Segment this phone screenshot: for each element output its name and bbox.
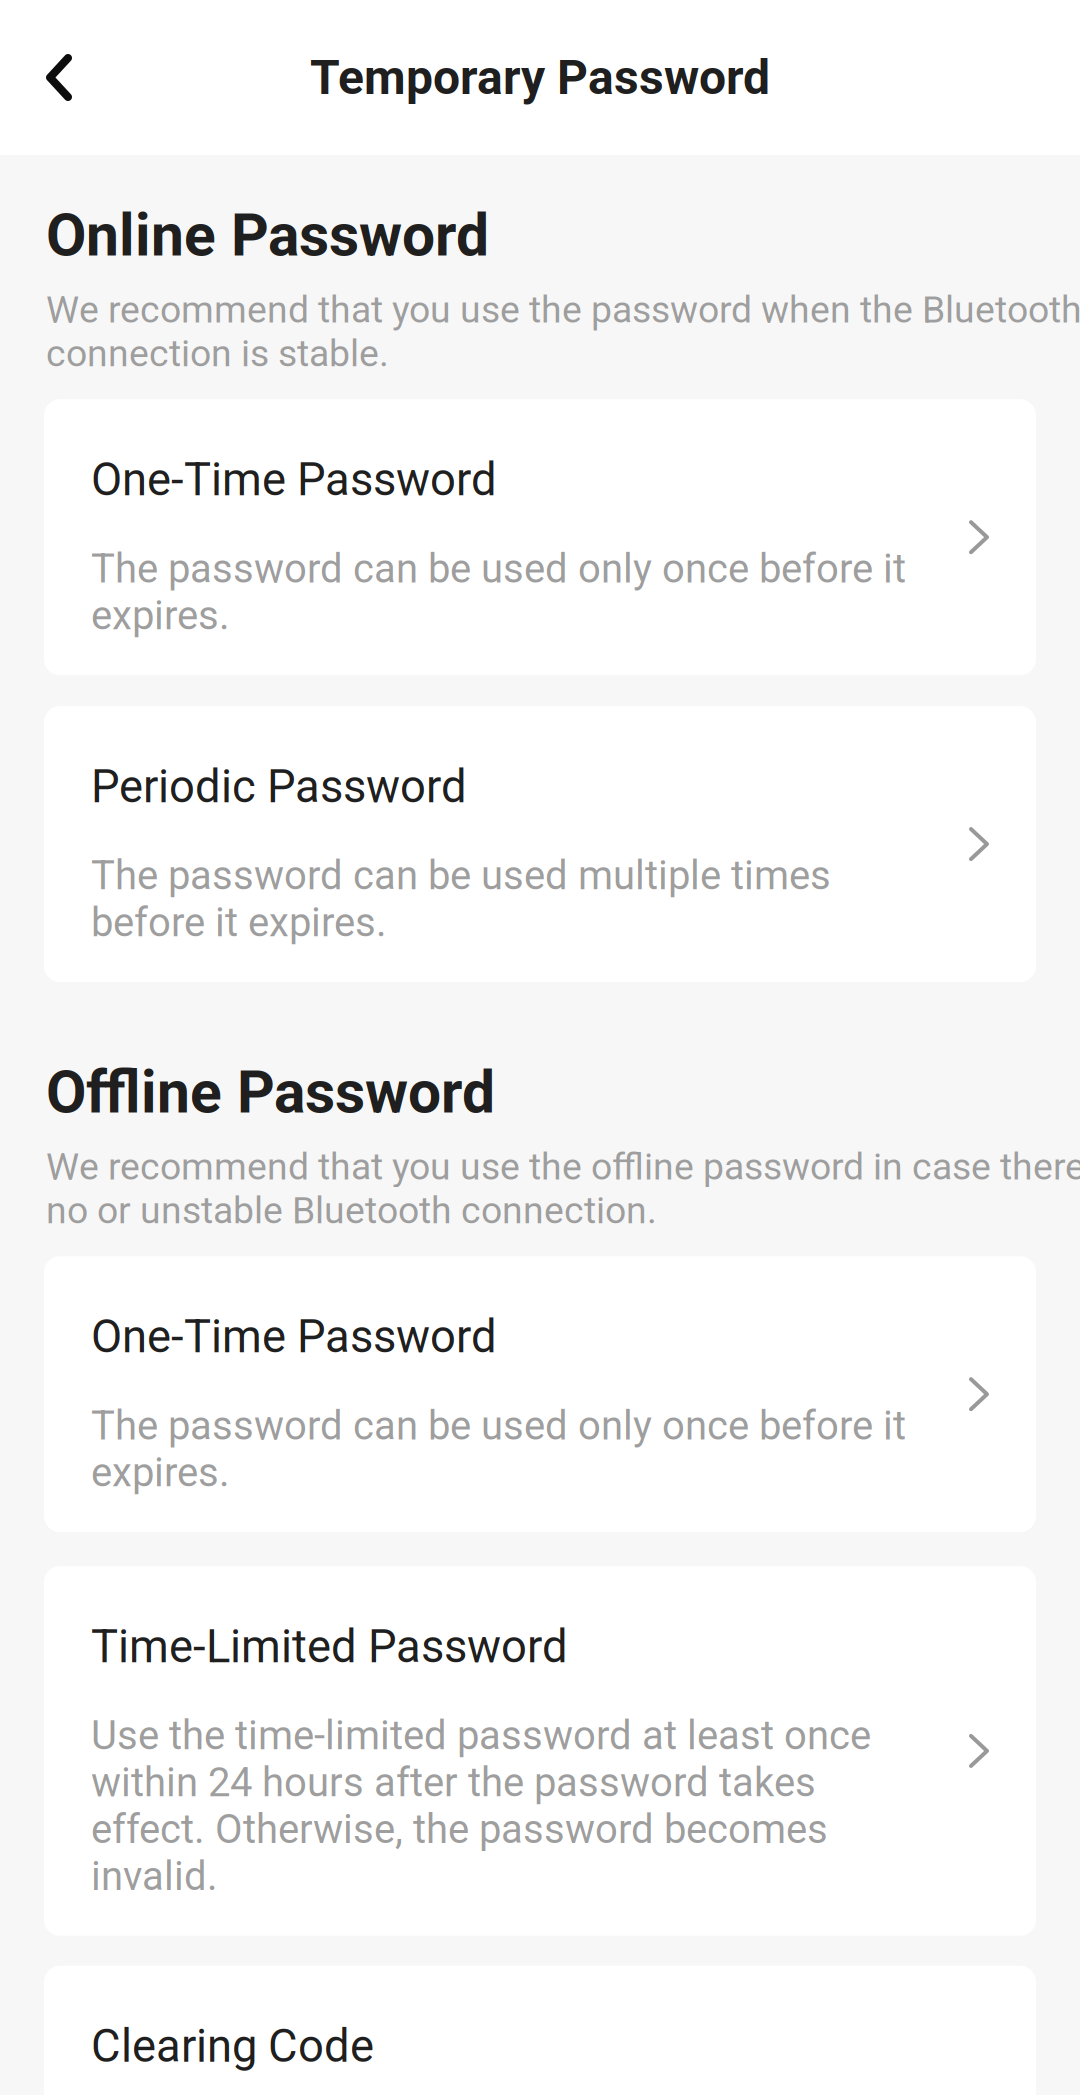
button[interactable]: One-Time Password (44, 1256, 1036, 1532)
staticText: The password can be used only once befor… (91, 545, 906, 639)
staticText: The password can be used multiple times … (91, 852, 831, 946)
staticText: Clearing Code (91, 2020, 374, 2073)
button[interactable]: Periodic Password (44, 706, 1036, 982)
staticText: Use the time-limited password at least o… (91, 1712, 871, 1900)
button[interactable]: One-Time Password (44, 399, 1036, 675)
staticText: Online Password (46, 201, 489, 270)
staticText: We recommend that you use the password w… (46, 288, 1080, 375)
staticText: Offline Password (46, 1058, 495, 1127)
staticText: Periodic Password (91, 760, 467, 813)
staticText: Time-Limited Password (91, 1620, 568, 1673)
staticText: We recommend that you use the offline pa… (46, 1145, 1080, 1232)
button[interactable]: Clearing Code (44, 1966, 1036, 2095)
staticText: One-Time Password (91, 1310, 497, 1363)
staticText: The password can be used only once befor… (91, 1402, 906, 1496)
staticText: One-Time Password (91, 453, 497, 506)
button[interactable]: Time-Limited Password (44, 1566, 1036, 1936)
button[interactable]: Back (11, 29, 107, 125)
staticText: Temporary Password (310, 49, 770, 106)
